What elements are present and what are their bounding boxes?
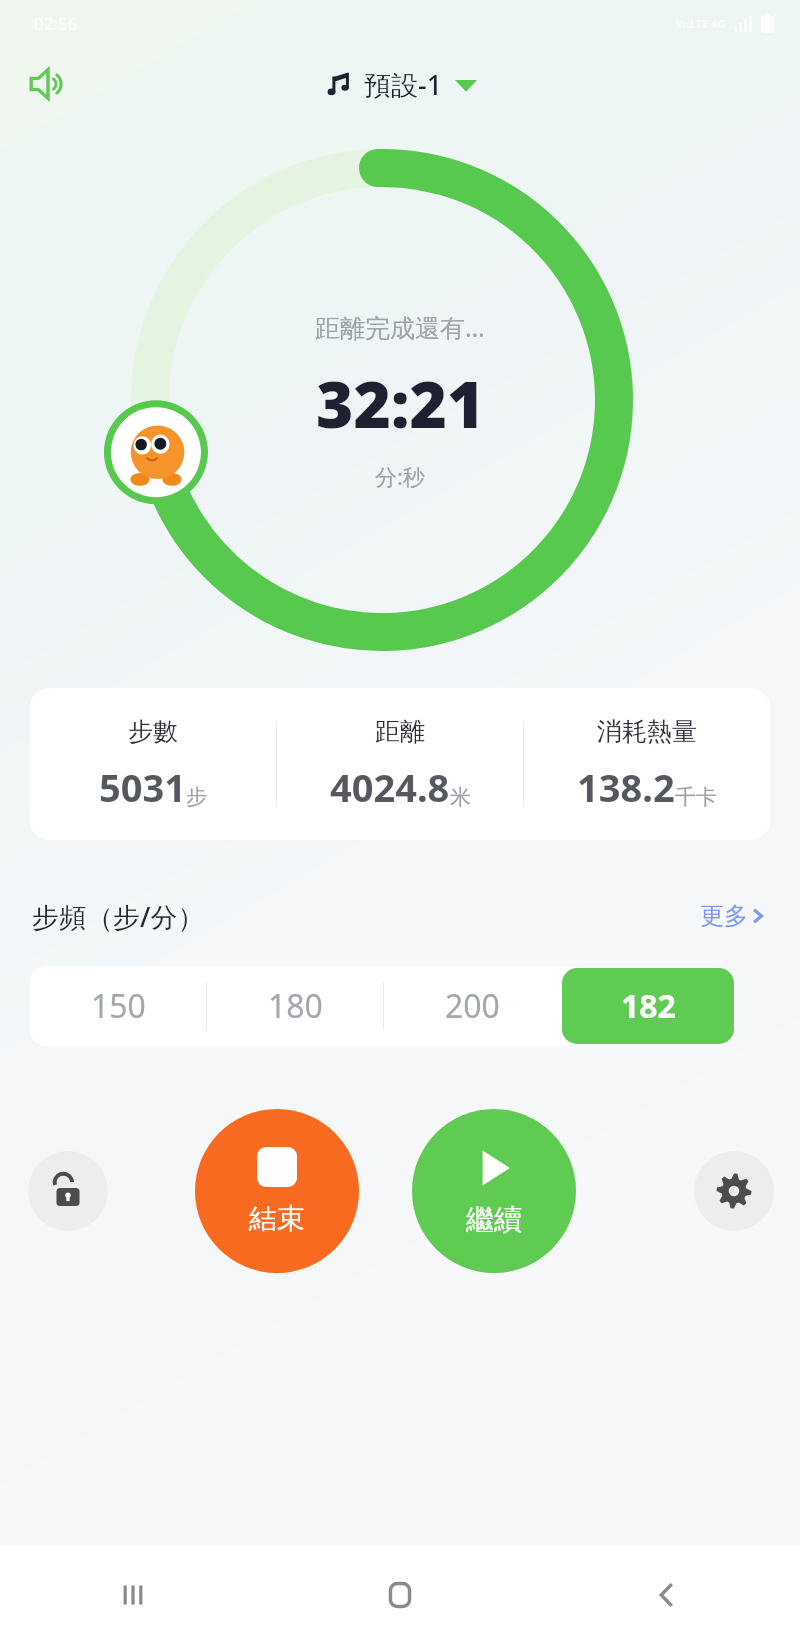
staticText: 4024.8 bbox=[330, 761, 450, 813]
staticText: 結束 bbox=[249, 1201, 305, 1236]
button[interactable]: 繼續 bbox=[412, 1109, 576, 1273]
staticText: 步 bbox=[186, 784, 207, 810]
staticText: 更多 bbox=[700, 901, 748, 931]
staticText: 消耗熱量 bbox=[597, 716, 697, 747]
staticText: 138.2 bbox=[577, 761, 675, 813]
staticText: 預設-1 bbox=[364, 66, 443, 103]
staticText: 182 bbox=[621, 984, 676, 1028]
staticText: 距離完成還有… bbox=[315, 310, 485, 344]
button[interactable]: 150 bbox=[30, 966, 206, 1046]
staticText: 分:秒 bbox=[375, 461, 425, 491]
staticText: 180 bbox=[268, 984, 323, 1028]
staticText: 繼續 bbox=[466, 1202, 522, 1237]
button[interactable]: 182 bbox=[562, 968, 734, 1044]
staticText: VoLTE 4G bbox=[676, 16, 726, 31]
staticText: 5031 bbox=[99, 761, 186, 813]
staticText: 步頻（步/分） bbox=[32, 898, 205, 935]
button[interactable]: Recent apps bbox=[0, 1545, 266, 1644]
staticText: 150 bbox=[91, 984, 146, 1028]
staticText: 千卡 bbox=[675, 784, 717, 810]
button[interactable]: Settings bbox=[694, 1151, 774, 1231]
button[interactable]: Voice broadcast bbox=[18, 54, 78, 114]
button[interactable]: 180 bbox=[207, 966, 383, 1046]
staticText: 200 bbox=[445, 984, 500, 1028]
button[interactable]: 結束 bbox=[195, 1109, 359, 1273]
staticText: 距離 bbox=[375, 716, 425, 747]
button[interactable]: 200 bbox=[384, 966, 560, 1046]
button[interactable]: Back bbox=[533, 1545, 800, 1644]
button[interactable]: Lock screen bbox=[28, 1151, 108, 1231]
button[interactable]: 預設-1 bbox=[314, 60, 487, 109]
staticText: 米 bbox=[450, 784, 471, 810]
button[interactable]: 步數 bbox=[30, 688, 770, 840]
staticText: 02:56 bbox=[34, 12, 78, 35]
staticText: 步數 bbox=[128, 716, 178, 747]
button[interactable]: 更多 bbox=[694, 897, 772, 935]
staticText: 32:21 bbox=[316, 360, 485, 447]
button[interactable]: Home bbox=[266, 1545, 533, 1644]
